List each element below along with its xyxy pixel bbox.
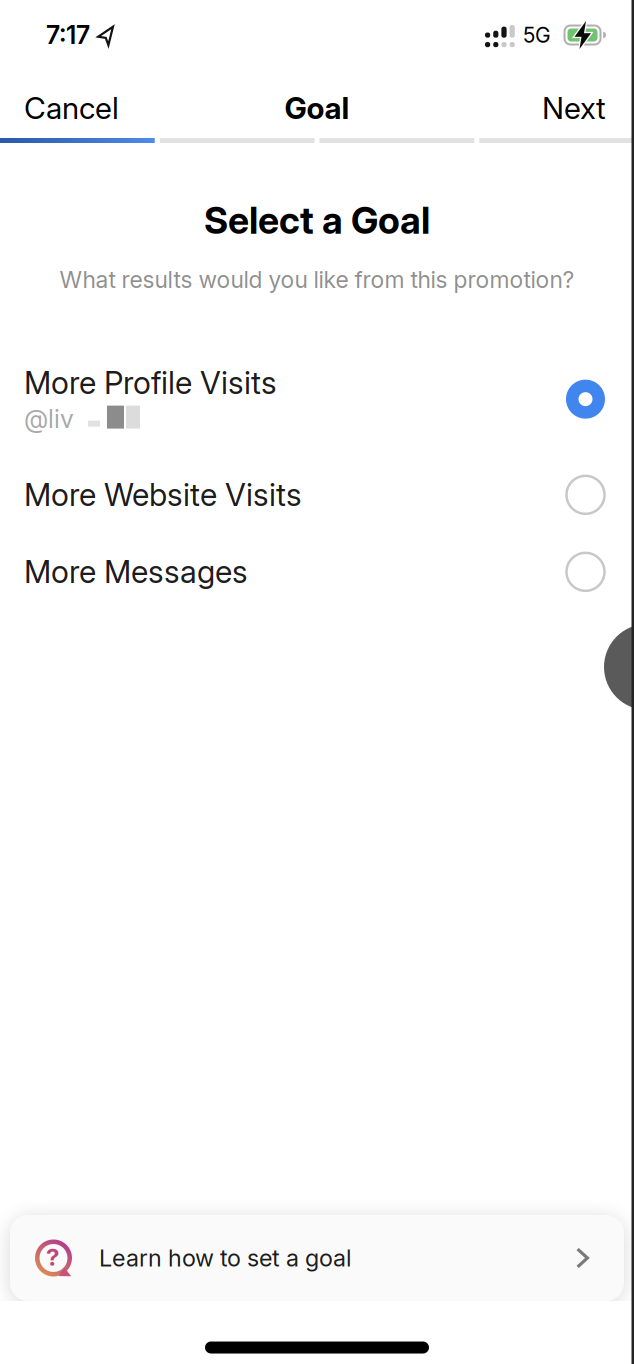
staticText: Learn how to set a goal	[99, 1244, 352, 1271]
staticText: Select a Goal	[204, 199, 430, 241]
button[interactable]: More Messages	[0, 552, 634, 591]
staticText: Next	[542, 91, 606, 125]
staticText: @liv	[24, 405, 74, 433]
button[interactable]: Cancel	[24, 91, 119, 125]
staticText: More Website Visits	[24, 477, 302, 513]
staticText: Cancel	[24, 91, 119, 125]
staticText: Goal	[284, 91, 349, 125]
staticText: ?	[46, 1243, 59, 1271]
staticText: What results would you like from this pr…	[59, 266, 574, 293]
staticText: 7:17	[46, 21, 90, 49]
staticText: More Profile Visits	[24, 365, 277, 401]
button[interactable]: More Website Visits	[0, 475, 634, 514]
staticText: More Messages	[24, 554, 248, 590]
button[interactable]: Next	[542, 91, 606, 125]
button[interactable]: ?	[10, 1215, 624, 1301]
staticText: 5G	[523, 23, 551, 47]
button[interactable]: More Profile Visits	[0, 365, 634, 433]
